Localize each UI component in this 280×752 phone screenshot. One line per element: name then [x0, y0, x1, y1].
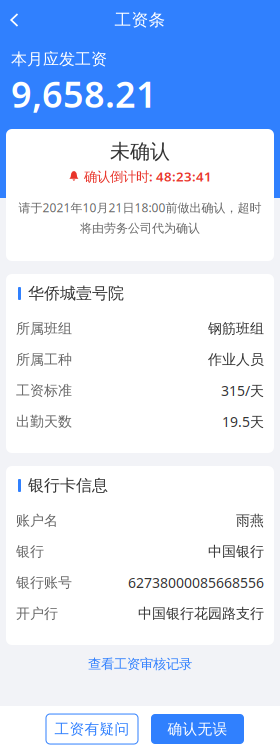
staticText: 出勤天数 [16, 413, 72, 430]
staticText: 9,658.21 [11, 69, 157, 118]
staticText: 银行账号 [16, 574, 72, 591]
button[interactable]: 工资有疑问 [46, 714, 138, 744]
staticText: 未确认 [110, 139, 170, 164]
button[interactable]: 查看工资审核记录 [0, 645, 280, 683]
staticText: 账户名 [16, 512, 58, 529]
button[interactable]: 确认无误 [151, 714, 244, 744]
staticText: 工资有疑问 [54, 720, 129, 738]
staticText: 工资标准 [16, 382, 72, 399]
staticText: 工资条 [114, 9, 165, 30]
staticText: 雨燕 [236, 512, 264, 529]
staticText: 开户行 [16, 605, 58, 622]
staticText: 确认无误 [167, 720, 227, 738]
staticText: 华侨城壹号院 [28, 283, 124, 304]
staticText: 钢筋班组 [208, 320, 264, 337]
staticText: 银行 [16, 543, 44, 560]
staticText: 19.5天 [222, 412, 264, 431]
staticText: 银行卡信息 [28, 475, 108, 496]
staticText: 本月应发工资 [11, 49, 107, 69]
staticText: 62738000085668556 [128, 573, 264, 592]
button[interactable]: 返回 [0, 3, 32, 37]
staticText: 所属工种 [16, 351, 72, 368]
staticText: 将由劳务公司代为确认 [80, 221, 200, 236]
staticText: 请于2021年10月21日18:00前做出确认，超时 [18, 199, 261, 216]
staticText: 查看工资审核记录 [88, 656, 192, 672]
staticText: 作业人员 [208, 351, 264, 368]
staticText: 所属班组 [16, 320, 72, 337]
staticText: 中国银行 [208, 543, 264, 560]
staticText: 中国银行花园路支行 [138, 605, 264, 622]
staticText: 315/天 [221, 381, 264, 400]
staticText: 确认倒计时: 48:23:41 [84, 167, 212, 185]
